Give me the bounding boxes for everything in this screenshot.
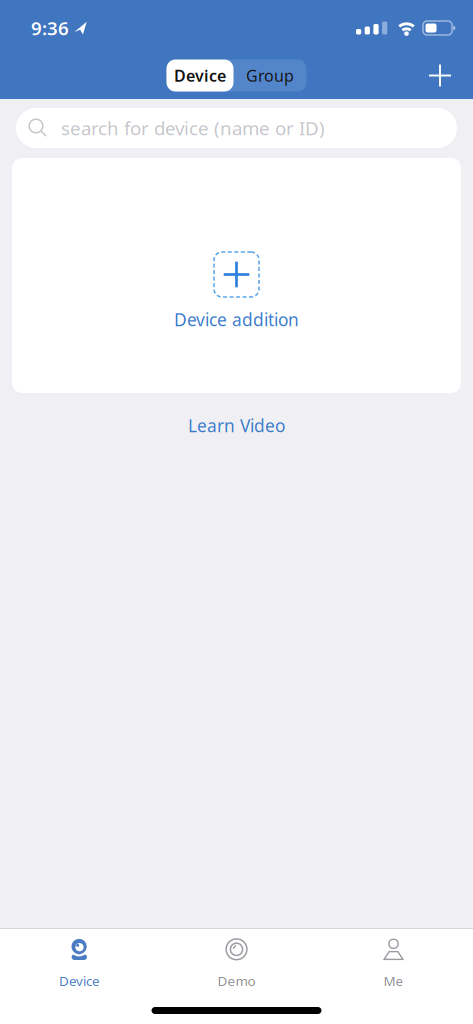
button[interactable]: Add device [428, 63, 452, 87]
button[interactable]: Me [315, 936, 472, 990]
staticText: Device [59, 972, 100, 990]
button[interactable]: Device addition [174, 158, 299, 331]
staticText: Group [246, 65, 294, 86]
button[interactable]: Device [1, 936, 158, 990]
button[interactable]: Group [233, 59, 306, 91]
staticText: search for device (name or ID) [61, 116, 325, 140]
staticText: Learn Video [188, 414, 285, 437]
button[interactable]: Learn Video [188, 414, 285, 437]
button[interactable]: Demo [158, 936, 315, 990]
staticText: Me [383, 972, 403, 990]
staticText: Demo [217, 972, 255, 990]
staticText: Device [174, 65, 226, 86]
staticText: 9:36 [31, 16, 69, 40]
button[interactable]: Device [166, 59, 233, 91]
button[interactable]: Search for device [16, 108, 457, 148]
staticText: Device addition [174, 308, 299, 331]
